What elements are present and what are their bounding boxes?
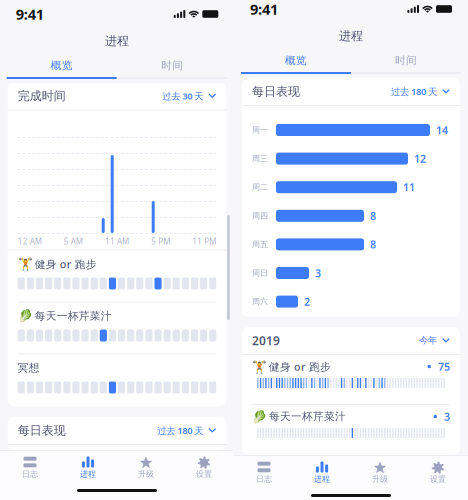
staticText: 过去 180 天 (391, 85, 437, 98)
staticText: 设置 (196, 469, 212, 479)
staticText: 周三 (252, 154, 268, 163)
staticText: 每日表现 (252, 84, 300, 99)
staticText: 健身 or 跑步 (269, 359, 331, 374)
staticText: 进程 (339, 29, 363, 43)
button[interactable]: 过去 30 天 (162, 90, 216, 102)
staticText: 时间 (161, 59, 183, 72)
staticText: 12 AM (18, 236, 42, 247)
staticText: 今年 (419, 335, 437, 346)
button[interactable]: 过去 180 天 (391, 85, 450, 98)
button[interactable]: 日志 (1, 456, 59, 479)
staticText: 每天一杯芹菜汁 (269, 410, 346, 423)
staticText: 设置 (430, 474, 446, 484)
staticText: 时间 (395, 54, 417, 67)
staticText: 8 (370, 237, 376, 251)
button[interactable]: 日志 (235, 461, 293, 484)
button[interactable]: 🥬 (242, 405, 460, 455)
staticText: 周一 (252, 125, 268, 135)
staticText: 🏋️ (252, 360, 267, 373)
staticText: 5 AM (64, 236, 83, 247)
staticText: 日志 (256, 474, 272, 484)
staticText: 🏋️ (18, 257, 33, 271)
button[interactable]: 概览 (241, 49, 351, 74)
staticText: 每天一杯芹菜汁 (35, 309, 112, 322)
staticText: 3 (444, 409, 450, 424)
staticText: 概览 (51, 59, 73, 72)
staticText: 冥想 (18, 361, 40, 374)
staticText: 升级 (372, 474, 388, 484)
staticText: 11 (403, 180, 415, 194)
button[interactable]: 设置 (175, 456, 233, 479)
staticText: 每日表现 (18, 423, 66, 438)
staticText: 3 (315, 266, 321, 280)
staticText: 周四 (252, 211, 268, 221)
button[interactable]: 今年 (419, 335, 450, 346)
staticText: 完成时间 (18, 89, 66, 103)
staticText: 8 (370, 209, 376, 223)
staticText: 🥬 (18, 309, 33, 323)
staticText: 健身 or 跑步 (35, 257, 97, 271)
staticText: 9:41 (250, 0, 278, 19)
staticText: 14 (436, 123, 448, 137)
staticText: 🥬 (252, 410, 267, 423)
staticText: 进程 (80, 469, 96, 479)
staticText: 11 PM (192, 236, 216, 247)
staticText: 5 PM (151, 236, 170, 247)
staticText: 过去 180 天 (157, 424, 203, 437)
button[interactable]: 时间 (117, 54, 227, 79)
staticText: 升级 (138, 469, 154, 479)
staticText: 周二 (252, 182, 268, 192)
button[interactable]: 升级 (117, 456, 175, 479)
staticText: 进程 (314, 474, 330, 484)
button[interactable]: 时间 (351, 49, 461, 74)
staticText: 周五 (252, 239, 268, 249)
staticText: 概览 (285, 54, 307, 67)
staticText: 75 (438, 359, 450, 374)
staticText: 周日 (252, 268, 268, 278)
staticText: 2019 (252, 332, 280, 348)
staticText: 9:41 (16, 4, 44, 24)
button[interactable]: 🥬 (8, 302, 226, 354)
staticText: 2 (304, 294, 310, 309)
button[interactable]: 冥想 (8, 354, 226, 406)
staticText: 12 (414, 151, 426, 166)
button[interactable]: 🏋️ (242, 355, 460, 405)
button[interactable]: 概览 (7, 54, 117, 79)
button[interactable]: 进程 (59, 456, 117, 479)
button[interactable]: 进程 (293, 461, 351, 484)
staticText: 过去 30 天 (162, 90, 203, 102)
button[interactable]: 升级 (351, 461, 409, 484)
staticText: 进程 (105, 34, 129, 48)
button[interactable]: 过去 180 天 (157, 424, 216, 437)
staticText: 11 AM (105, 236, 129, 247)
staticText: 日志 (22, 469, 38, 479)
button[interactable]: 设置 (409, 461, 467, 484)
button[interactable]: 🏋️ (8, 250, 226, 302)
staticText: 周六 (252, 297, 268, 306)
